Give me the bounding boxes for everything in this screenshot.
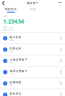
staticText: 查看明细 — [9, 39, 13, 41]
button[interactable]: 定期理财 — [0, 78, 65, 89]
staticText: 稳健 — [9, 85, 11, 86]
staticText: 深圳证券账户 — [9, 69, 27, 73]
staticText: 基金持仓 — [9, 92, 21, 95]
button[interactable]: 我的持仓 — [0, 6, 22, 14]
staticText: 上海证券账户 — [9, 58, 27, 61]
button[interactable]: 深圳证券账户 — [0, 67, 65, 77]
button[interactable]: 上海证券账户 — [0, 56, 65, 66]
staticText: 我的资产 — [26, 1, 38, 5]
staticText: 今日收益 — [3, 26, 7, 28]
staticText: 账户总览 — [9, 35, 21, 39]
staticText: 已开通 — [9, 73, 12, 75]
button[interactable]: 交易记录 — [0, 44, 65, 55]
staticText: 1,234.56 — [3, 18, 24, 25]
staticText: 我的持仓 — [5, 7, 17, 11]
staticText: +12.34 — [8, 26, 13, 28]
staticText: 近三个月 — [9, 51, 13, 52]
button[interactable]: 基金持仓 — [0, 89, 65, 96]
button[interactable]: 账户总览 — [0, 33, 65, 43]
staticText: ••• — [58, 1, 61, 5]
button[interactable]: Back — [0, 0, 10, 6]
staticText: 交易记录 — [9, 47, 21, 50]
staticText: 已开通 — [9, 62, 12, 64]
staticText: +56.78 — [8, 29, 13, 31]
button[interactable]: More — [55, 0, 65, 6]
staticText: 总资产(元) — [3, 15, 7, 17]
staticText: 自选 — [30, 7, 36, 11]
button[interactable]: 自选 — [22, 6, 44, 14]
staticText: 定期理财 — [9, 81, 21, 84]
